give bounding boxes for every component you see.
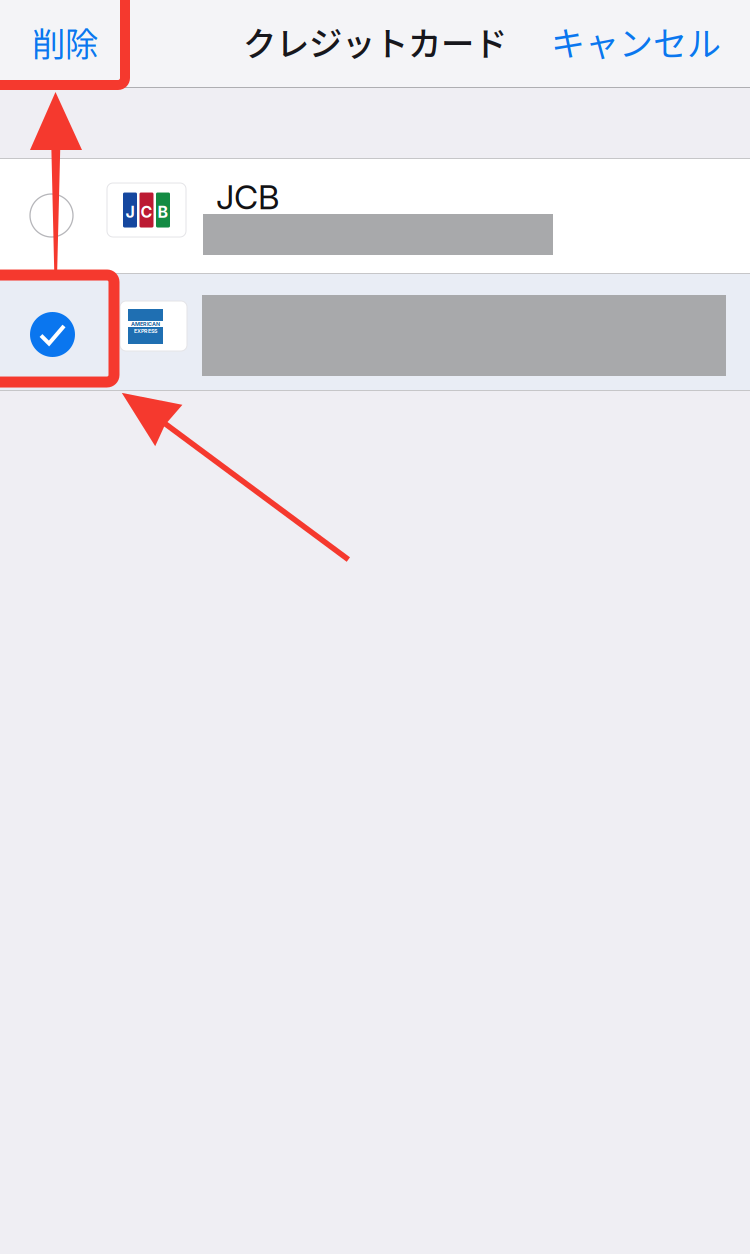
staticText: AMERICAN bbox=[131, 321, 160, 327]
button[interactable]: 削除 bbox=[0, 0, 127, 88]
button[interactable]: AMERICAN bbox=[0, 274, 750, 390]
staticText: JCB bbox=[216, 177, 279, 217]
button[interactable]: キャンセル bbox=[521, 0, 750, 88]
staticText: C bbox=[140, 202, 152, 222]
staticText: B bbox=[157, 202, 168, 222]
staticText: キャンセル bbox=[551, 17, 721, 66]
staticText: クレジットカード bbox=[243, 17, 507, 66]
staticText: EXPRESS bbox=[134, 328, 157, 334]
staticText: 削除 bbox=[32, 18, 98, 66]
staticText: J bbox=[125, 202, 134, 222]
button[interactable]: J bbox=[0, 159, 750, 273]
